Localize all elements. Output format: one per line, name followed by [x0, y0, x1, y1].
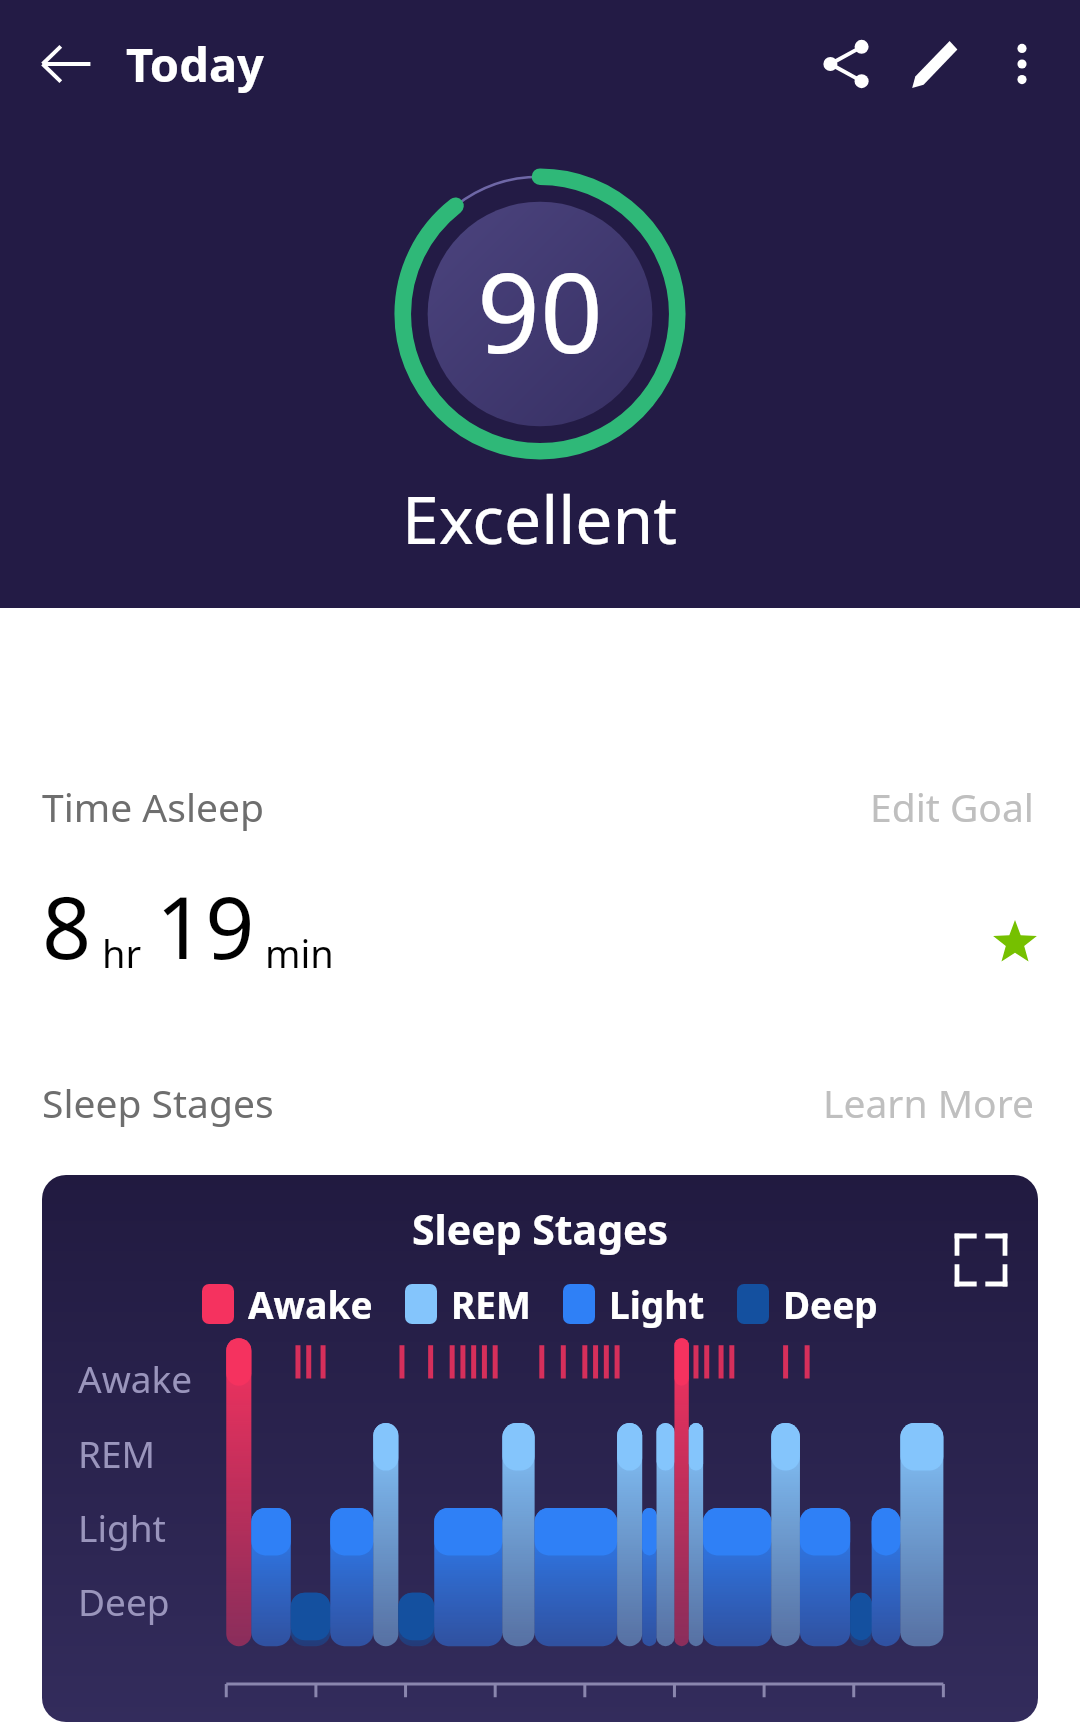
staticText: REM — [78, 1428, 156, 1478]
button[interactable]: Light — [563, 1279, 705, 1329]
staticText: min — [265, 927, 334, 979]
button[interactable]: Share — [802, 20, 890, 108]
staticText: Learn More — [823, 1076, 1034, 1129]
staticText: Today — [126, 32, 264, 96]
staticText: Edit Goal — [870, 780, 1034, 833]
staticText: 90 — [477, 235, 603, 385]
button[interactable]: Edit Goal — [866, 776, 1038, 837]
staticText: REM — [451, 1279, 531, 1329]
button[interactable]: Back — [24, 22, 108, 106]
staticText: Time Asleep — [42, 780, 264, 833]
staticText: Awake — [248, 1279, 373, 1329]
staticText: Deep — [78, 1576, 170, 1626]
staticText: 19 — [156, 867, 255, 984]
staticText: Light — [78, 1502, 166, 1552]
staticText: 8 — [42, 867, 92, 984]
button[interactable]: Expand chart — [952, 1231, 1010, 1289]
staticText: Sleep Stages — [42, 1201, 1038, 1257]
button[interactable]: Awake — [202, 1279, 373, 1329]
button[interactable]: Deep — [737, 1279, 878, 1329]
staticText: Deep — [783, 1279, 878, 1329]
button[interactable]: REM — [405, 1279, 531, 1329]
staticText: Light — [609, 1279, 705, 1329]
staticText: Excellent — [402, 473, 678, 563]
staticText: Awake — [78, 1353, 193, 1403]
button[interactable]: Sleep Stages — [42, 1175, 1038, 1722]
button[interactable]: Edit — [890, 20, 978, 108]
staticText: Sleep Stages — [42, 1076, 274, 1129]
button[interactable]: Learn More — [819, 1072, 1038, 1133]
button[interactable]: More options — [978, 20, 1066, 108]
staticText: hr — [102, 927, 142, 979]
